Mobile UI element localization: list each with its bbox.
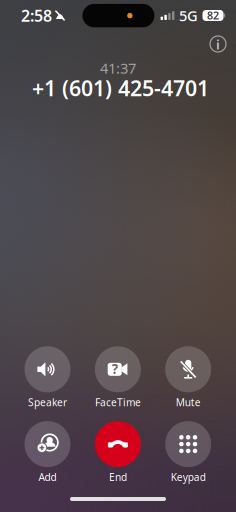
staticText: 2:58 bbox=[21, 5, 52, 26]
button[interactable]: Keypad bbox=[153, 421, 223, 484]
staticText: i bbox=[216, 35, 220, 53]
staticText: 41:37 bbox=[100, 58, 136, 78]
button[interactable]: ? bbox=[83, 346, 153, 409]
staticText: 82 bbox=[207, 8, 219, 22]
button[interactable]: Mute bbox=[153, 346, 223, 409]
button[interactable]: Speaker bbox=[12, 346, 82, 409]
button[interactable]: Call details bbox=[203, 29, 233, 59]
button[interactable]: Add bbox=[12, 421, 82, 484]
staticText: 5G bbox=[179, 6, 198, 25]
staticText: Speaker bbox=[28, 395, 67, 409]
staticText: FaceTime bbox=[95, 395, 141, 409]
staticText: End bbox=[109, 470, 127, 484]
button[interactable]: End bbox=[83, 421, 153, 484]
staticText: ? bbox=[112, 360, 118, 378]
staticText: Add bbox=[38, 470, 56, 484]
staticText: Mute bbox=[176, 395, 201, 409]
staticText: +1 (601) 425-4701 bbox=[32, 74, 209, 102]
staticText: Keypad bbox=[171, 470, 206, 484]
